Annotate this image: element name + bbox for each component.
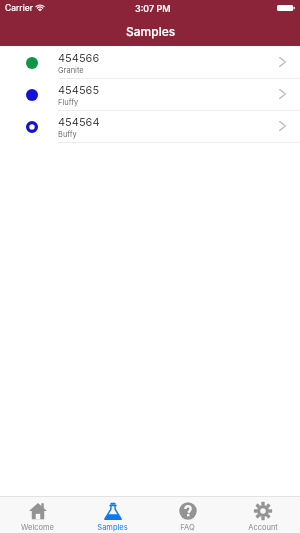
staticText: Carrier <box>5 3 33 13</box>
staticText: 454565 <box>58 83 100 96</box>
staticText: Fluffy <box>58 98 79 107</box>
button[interactable]: 454564 <box>0 110 300 142</box>
staticText: 454566 <box>58 51 100 64</box>
staticText: 3:07 PM <box>135 3 171 14</box>
staticText: Samples <box>97 523 128 532</box>
staticText: Buffy <box>58 130 77 139</box>
button[interactable]: FAQ <box>150 497 225 533</box>
button[interactable]: 454565 <box>0 78 300 110</box>
button[interactable]: Samples <box>75 497 150 533</box>
staticText: Welcome <box>21 523 54 532</box>
staticText: Granite <box>58 66 84 75</box>
button[interactable]: 454566 <box>0 46 300 78</box>
staticText: Account <box>248 523 278 532</box>
button[interactable]: Welcome <box>0 497 75 533</box>
staticText: FAQ <box>180 523 195 532</box>
staticText: Samples <box>126 24 176 39</box>
staticText: 454564 <box>58 115 100 128</box>
button[interactable]: Account <box>225 497 300 533</box>
